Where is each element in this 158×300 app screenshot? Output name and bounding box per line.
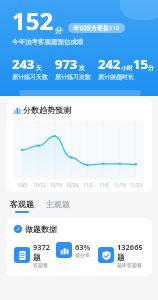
staticText: 11/16 (112, 182, 128, 188)
button[interactable]: 你已经超越了同期96%的同学 (19, 90, 141, 96)
staticText: 得分率 (75, 252, 90, 258)
staticText: 152 (12, 4, 54, 37)
staticText: 分数趋势预测 (23, 105, 71, 115)
staticText: 累计练习次数 (55, 73, 91, 81)
other: 答题量 (14, 247, 30, 263)
button[interactable]: 答题量 (14, 242, 56, 268)
staticText: 10/5 (14, 182, 31, 188)
staticText: 小时 (121, 64, 133, 72)
staticText: 973 (55, 55, 78, 73)
staticText: 天 (36, 64, 42, 72)
other: 得分率 (56, 242, 72, 258)
staticText: 累计做题时长 (98, 73, 134, 81)
staticText: 题库答题量 (117, 262, 142, 268)
staticText: 答题量 (33, 262, 48, 268)
staticText: 累计练习天数 (12, 73, 48, 81)
staticText: 11/9 (96, 182, 112, 188)
staticText: 9372题 (33, 242, 56, 262)
staticText: 客观题 (10, 199, 34, 209)
staticText: 做题数据 (25, 224, 57, 234)
staticText: 10/19 (48, 182, 64, 188)
button[interactable]: 得分率 (56, 242, 98, 258)
staticText: 63% (75, 242, 91, 252)
staticText: 10/26 (64, 182, 80, 188)
staticText: 242 (98, 55, 121, 73)
other: 题库答题量 (98, 247, 114, 263)
staticText: 11/23 (128, 182, 144, 188)
button[interactable]: 客观题 (10, 199, 34, 213)
staticText: 243 (12, 55, 35, 73)
staticText: 10/12 (31, 182, 48, 188)
staticText: 11/2 (80, 182, 96, 188)
staticText: 15 (133, 55, 148, 73)
staticText: 次 (79, 64, 85, 72)
button[interactable]: 题库答题量 (98, 242, 146, 268)
staticText: 132665题 (117, 242, 146, 262)
button[interactable]: 主观题 (46, 199, 70, 209)
staticText: 分 (55, 25, 63, 35)
staticText: 考试综合要提110 (73, 24, 120, 32)
staticText: 今年法考客观题预估成绩 (12, 38, 84, 46)
button[interactable]: 考试综合要提110 (68, 23, 125, 33)
staticText: 主观题 (46, 199, 70, 209)
